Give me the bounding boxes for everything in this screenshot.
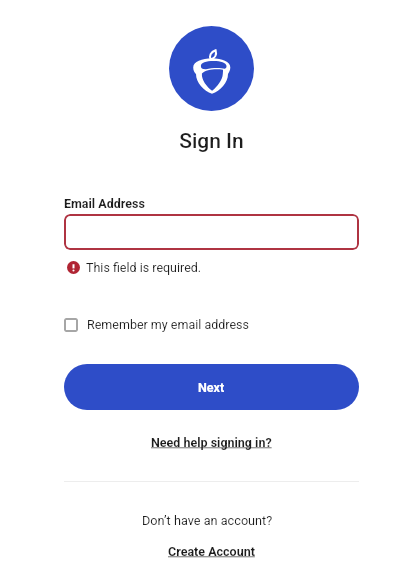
staticText: Create Account: [168, 544, 255, 559]
other: College Board acorn logo: [192, 50, 232, 96]
staticText: This field is required.: [86, 260, 202, 275]
button[interactable]: Email Address text field: [64, 214, 359, 250]
staticText: Don’t have an account?: [142, 513, 273, 528]
button[interactable]: Next: [64, 364, 359, 410]
staticText: Remember my email address: [87, 317, 249, 332]
button[interactable]: Create Account: [168, 544, 255, 559]
button[interactable]: Need help signing in?: [151, 435, 272, 450]
staticText: Email Address: [64, 196, 145, 211]
staticText: Next: [198, 380, 225, 395]
button[interactable]: Remember my email address: [64, 317, 249, 332]
staticText: Need help signing in?: [151, 435, 272, 450]
staticText: Sign In: [179, 129, 244, 154]
